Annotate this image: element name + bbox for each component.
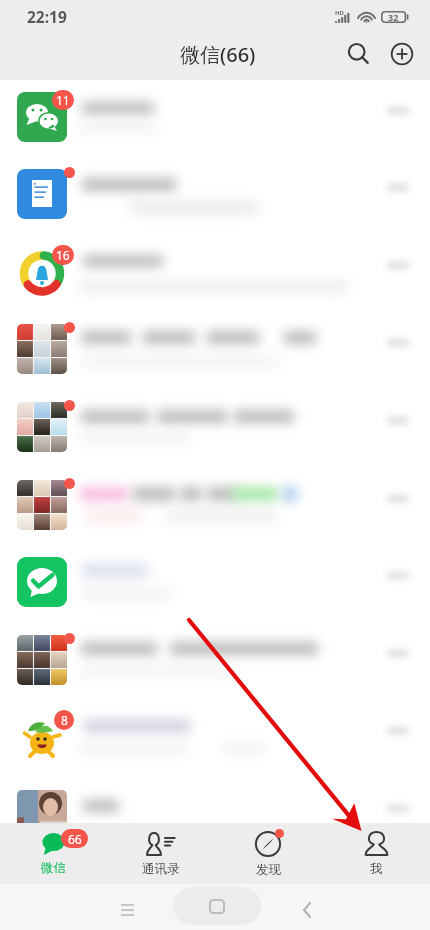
staticText: 8 [61, 712, 68, 728]
button[interactable] [0, 635, 430, 713]
button[interactable] [0, 712, 430, 790]
button[interactable] [0, 247, 430, 325]
button[interactable]: Back [287, 890, 327, 930]
button[interactable] [0, 402, 430, 480]
button[interactable]: 通讯录 [107, 823, 214, 884]
button[interactable]: 66 [0, 823, 107, 884]
staticText: 我 [370, 861, 383, 877]
staticText: 16 [56, 247, 70, 263]
button[interactable] [0, 557, 430, 635]
staticText: 微信 [41, 860, 66, 876]
button[interactable]: Recent apps [107, 890, 147, 930]
staticText: 11 [56, 92, 70, 108]
staticText: 66 [68, 831, 82, 847]
staticText: 通讯录 [142, 861, 180, 877]
staticText: 发现 [256, 862, 281, 878]
button[interactable] [0, 480, 430, 558]
button[interactable] [0, 169, 430, 247]
button[interactable]: Search [336, 32, 380, 76]
staticText: 微信(66) [180, 41, 256, 68]
button[interactable]: 我 [322, 823, 430, 884]
staticText: 22:19 [27, 6, 67, 27]
staticText: HD [335, 9, 344, 17]
button[interactable] [0, 92, 430, 170]
button[interactable]: Add [380, 32, 424, 76]
button[interactable]: Home [173, 887, 261, 925]
button[interactable] [0, 324, 430, 402]
staticText: 32 [388, 11, 399, 23]
button[interactable]: 发现 [214, 823, 322, 884]
button[interactable] [0, 790, 430, 868]
